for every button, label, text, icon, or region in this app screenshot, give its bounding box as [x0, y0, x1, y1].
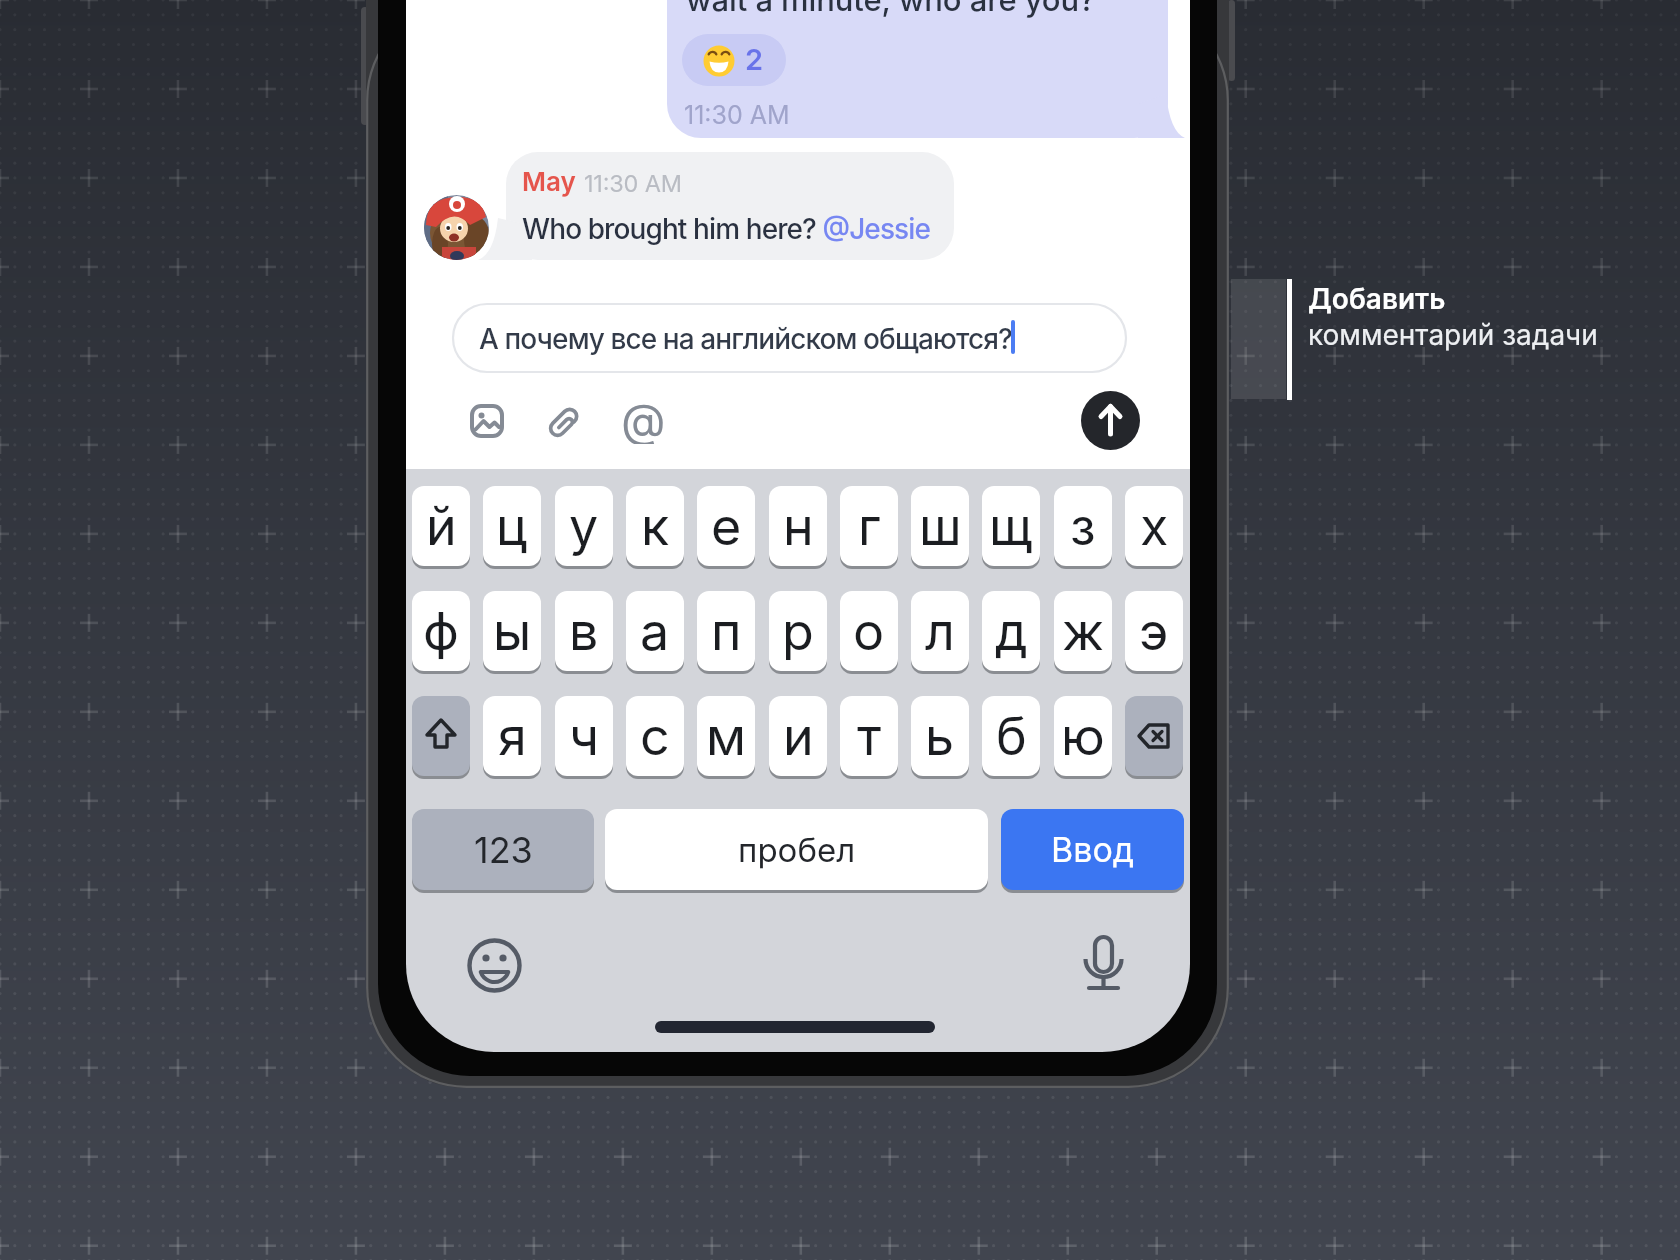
button[interactable]: пробел	[605, 809, 988, 890]
staticText: @	[621, 392, 666, 444]
button[interactable]	[1081, 391, 1140, 450]
staticText: е	[711, 495, 742, 558]
staticText: й	[426, 495, 457, 558]
button[interactable]	[682, 34, 786, 86]
staticText: ц	[496, 495, 528, 558]
staticText: 123	[474, 828, 533, 872]
staticText: г	[858, 495, 881, 558]
staticText: и	[783, 705, 814, 768]
button[interactable]: з	[1054, 486, 1112, 566]
staticText: ы	[493, 600, 532, 663]
staticText: ж	[1062, 600, 1105, 663]
staticText: н	[783, 495, 814, 558]
button[interactable]: Ввод	[1001, 809, 1184, 890]
staticText: ф	[423, 600, 459, 663]
button[interactable]	[546, 402, 582, 440]
staticText: к	[641, 495, 670, 558]
button[interactable]	[470, 404, 504, 438]
button[interactable]: у	[555, 486, 613, 566]
staticText: з	[1070, 495, 1096, 558]
staticText: р	[782, 600, 814, 663]
staticText: Ввод	[1051, 829, 1135, 870]
staticText: ь	[925, 705, 955, 768]
button[interactable]: ф	[412, 591, 470, 671]
button[interactable]: д	[982, 591, 1040, 671]
staticText: May	[522, 166, 576, 197]
staticText: Who brought him here? @Jessie	[522, 212, 930, 246]
staticText: б	[996, 705, 1027, 768]
button[interactable]: ж	[1054, 591, 1112, 671]
button[interactable]: ц	[483, 486, 541, 566]
button[interactable]: @	[619, 392, 671, 444]
button[interactable]: х	[1125, 486, 1183, 566]
staticText: комментарий задачи	[1308, 318, 1598, 352]
button[interactable]	[464, 935, 525, 996]
staticText: в	[569, 600, 599, 663]
button[interactable]: р	[769, 591, 827, 671]
staticText: с	[640, 705, 670, 768]
staticText: А почему все на английском общаются?	[479, 322, 1012, 356]
button[interactable]: щ	[982, 486, 1040, 566]
button[interactable]	[1125, 696, 1183, 776]
button[interactable]: п	[697, 591, 755, 671]
button[interactable]: ю	[1054, 696, 1112, 776]
button[interactable]: и	[769, 696, 827, 776]
button[interactable]: г	[840, 486, 898, 566]
button[interactable]: м	[697, 696, 755, 776]
button[interactable]: н	[769, 486, 827, 566]
staticText: т	[857, 705, 882, 768]
button[interactable]: т	[840, 696, 898, 776]
staticText: ч	[569, 705, 600, 768]
staticText: а	[640, 600, 670, 663]
button[interactable]: с	[626, 696, 684, 776]
button[interactable]	[452, 303, 1127, 373]
staticText: п	[711, 600, 742, 663]
staticText: 11:30 AM	[684, 100, 790, 130]
staticText: у	[569, 495, 599, 558]
button[interactable]: 123	[412, 809, 594, 890]
button[interactable]: к	[626, 486, 684, 566]
staticText: wait a minute, who are you?	[686, 0, 1096, 19]
staticText: д	[995, 600, 1028, 663]
button[interactable]: я	[483, 696, 541, 776]
button[interactable]: б	[982, 696, 1040, 776]
button[interactable]: ы	[483, 591, 541, 671]
staticText: ш	[919, 495, 962, 558]
staticText: я	[498, 705, 527, 768]
button[interactable]: в	[555, 591, 613, 671]
button[interactable]	[1075, 930, 1133, 994]
staticText: 11:30 AM	[584, 169, 682, 197]
button[interactable]: а	[626, 591, 684, 671]
button[interactable]: э	[1125, 591, 1183, 671]
staticText: э	[1139, 600, 1169, 663]
staticText: Добавить	[1308, 282, 1446, 316]
button[interactable]: й	[412, 486, 470, 566]
button[interactable]: е	[697, 486, 755, 566]
staticText: л	[925, 600, 955, 663]
button[interactable]: ш	[911, 486, 969, 566]
staticText: о	[853, 600, 885, 663]
button[interactable]: о	[840, 591, 898, 671]
staticText: м	[706, 705, 747, 768]
staticText: ю	[1061, 705, 1105, 768]
button[interactable]: ь	[911, 696, 969, 776]
button[interactable]: л	[911, 591, 969, 671]
staticText: 2	[745, 42, 764, 77]
staticText: щ	[989, 495, 1033, 558]
staticText: пробел	[738, 830, 856, 870]
staticText: х	[1140, 495, 1169, 558]
button[interactable]: ч	[555, 696, 613, 776]
button[interactable]	[412, 696, 470, 776]
